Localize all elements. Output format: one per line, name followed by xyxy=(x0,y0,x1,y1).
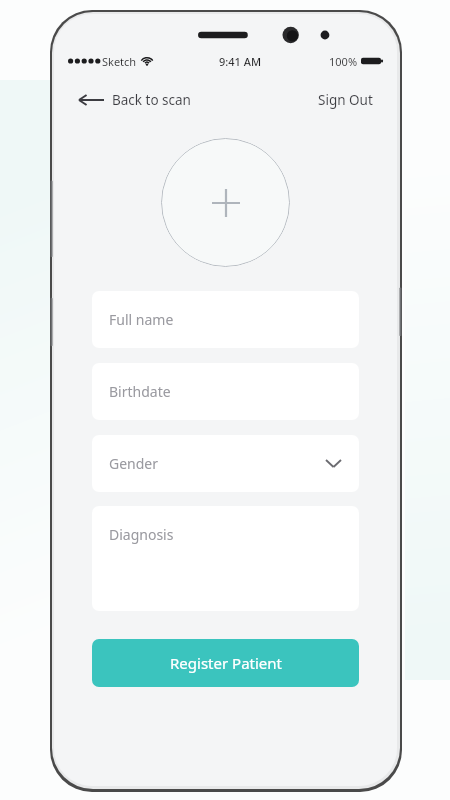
button[interactable]: Sign Out xyxy=(314,88,377,112)
staticText: Birthdate xyxy=(109,382,171,401)
staticText: Sketch xyxy=(102,54,137,69)
button[interactable]: Full name xyxy=(92,291,359,348)
staticText: Register Patient xyxy=(170,653,282,673)
button[interactable]: Back xyxy=(74,88,195,112)
staticText: Diagnosis xyxy=(109,525,174,544)
button[interactable]: Register Patient xyxy=(92,639,359,687)
button[interactable]: Add patient photo xyxy=(161,138,290,267)
button[interactable]: Diagnosis xyxy=(92,506,359,611)
other: Back xyxy=(78,93,104,107)
button[interactable]: Birthdate xyxy=(92,363,359,420)
staticText: Gender xyxy=(109,454,159,473)
staticText: Back to scan xyxy=(112,91,191,109)
staticText: 9:41 AM xyxy=(219,54,262,69)
staticText: Full name xyxy=(109,310,174,329)
staticText: 100% xyxy=(329,54,358,69)
staticText: Sign Out xyxy=(318,91,373,109)
button[interactable]: Gender xyxy=(92,435,359,492)
